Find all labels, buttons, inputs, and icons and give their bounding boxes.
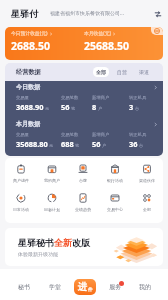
- staticText: 笔: [75, 143, 80, 148]
- button[interactable]: 本月数据: [5, 120, 163, 149]
- staticText: 户: [98, 106, 103, 111]
- button[interactable]: 星驿秘书: [5, 228, 163, 266]
- staticText: 今日预计收益(元): [11, 30, 48, 37]
- button[interactable]: 台牌: [67, 164, 99, 183]
- button[interactable]: 渠道伙伴: [131, 164, 163, 183]
- staticText: 经营数据: [16, 68, 41, 76]
- staticText: 笔: [71, 106, 76, 111]
- button[interactable]: 切换商户: [153, 9, 163, 19]
- button[interactable]: 银行活动: [99, 164, 131, 183]
- staticText: 全部: [143, 207, 151, 212]
- staticText: 户: [102, 143, 107, 148]
- button[interactable]: 全部: [93, 67, 109, 77]
- staticText: 服务: [109, 283, 121, 291]
- staticText: 转正机具: [129, 132, 147, 137]
- staticText: 今日数据: [16, 83, 40, 91]
- staticText: 商户进件: [13, 178, 29, 183]
- staticText: 元: [45, 106, 50, 111]
- button[interactable]: 本月收益(元): [84, 27, 163, 60]
- staticText: 全新: [54, 237, 72, 248]
- staticText: 业绩趋势: [75, 207, 91, 212]
- staticText: 交易量: [16, 132, 29, 137]
- staticText: 交易笔数: [61, 132, 79, 137]
- staticText: 银行活动: [107, 178, 123, 183]
- button[interactable]: 我的商户: [36, 164, 67, 183]
- staticText: 改版: [72, 237, 90, 248]
- button[interactable]: 服务: [100, 269, 130, 300]
- staticText: 2688.50: [11, 39, 50, 53]
- staticText: 交易量: [16, 95, 29, 100]
- staticText: 日常活动: [13, 207, 29, 212]
- button[interactable]: 自营: [114, 67, 130, 77]
- staticText: 件: [88, 287, 93, 293]
- staticText: 星驿秘书: [18, 237, 54, 248]
- button[interactable]: 学堂: [39, 269, 70, 300]
- staticText: 56: [92, 139, 101, 149]
- staticText: 本月收益(元): [84, 30, 111, 37]
- staticText: 25688.50: [84, 39, 129, 53]
- staticText: 新增商户: [92, 95, 110, 100]
- staticText: 本月数据: [16, 120, 40, 128]
- staticText: 8: [92, 102, 97, 112]
- staticText: 3688.90: [16, 102, 44, 112]
- staticText: 56: [61, 102, 70, 112]
- button[interactable]: 隐藏金额: [151, 27, 163, 35]
- staticText: 35688.80: [16, 139, 48, 149]
- button[interactable]: 目标计划: [36, 193, 67, 212]
- button[interactable]: 秘书: [8, 269, 39, 300]
- button[interactable]: 今日数据: [5, 83, 163, 112]
- staticText: 台: [135, 106, 140, 111]
- staticText: 体验最新升级功能: [18, 251, 58, 257]
- staticText: 新增商户: [92, 132, 110, 137]
- staticText: 台: [139, 143, 144, 148]
- button[interactable]: 全部: [131, 193, 163, 212]
- button[interactable]: 商户进件: [5, 164, 36, 183]
- staticText: 进: [78, 281, 88, 293]
- button[interactable]: 业绩趋势: [67, 193, 99, 212]
- staticText: 渠道: [139, 69, 149, 75]
- staticText: 自营: [117, 69, 127, 75]
- staticText: 我的商户: [44, 178, 60, 183]
- staticText: 交易中心: [107, 207, 123, 212]
- staticText: 学堂: [49, 283, 61, 291]
- button[interactable]: 渠道: [136, 67, 152, 77]
- staticText: 转正机具: [129, 95, 147, 100]
- button[interactable]: 今日预计收益(元): [11, 27, 84, 60]
- staticText: 星驿付: [11, 8, 38, 19]
- staticText: 36: [129, 139, 138, 149]
- button[interactable]: 日常活动: [5, 193, 36, 212]
- staticText: 福建省福州市快乐餐饮有限公司...: [50, 10, 125, 17]
- staticText: 渠道伙伴: [139, 178, 155, 183]
- staticText: 元: [49, 143, 54, 148]
- staticText: 我的: [139, 283, 151, 291]
- staticText: 目标计划: [44, 207, 60, 212]
- button[interactable]: 我的: [130, 269, 160, 300]
- staticText: 3: [129, 102, 134, 112]
- staticText: 688: [61, 139, 74, 149]
- staticText: 交易笔数: [61, 95, 79, 100]
- staticText: 秘书: [18, 283, 30, 291]
- staticText: 全部: [96, 69, 106, 75]
- button[interactable]: 进: [74, 279, 96, 295]
- button[interactable]: 交易中心: [99, 193, 131, 212]
- staticText: 台牌: [79, 178, 87, 183]
